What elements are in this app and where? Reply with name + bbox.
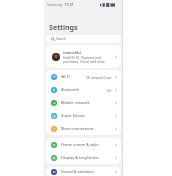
staticText: Search	[56, 37, 67, 41]
staticText: Wi-Fi	[61, 74, 70, 79]
button[interactable]: More connections	[46, 122, 121, 135]
staticText: Samsung	[47, 2, 62, 7]
staticText: Super Device	[61, 113, 85, 118]
button[interactable]: Search	[46, 35, 121, 43]
staticText: mamchbl	[63, 50, 81, 55]
button[interactable]: Home screen & style	[46, 138, 121, 151]
staticText: purchases, Cloud, and more	[63, 60, 105, 64]
staticText: Home screen & style	[61, 142, 99, 147]
staticText: Bluetooth	[61, 87, 80, 92]
button[interactable]: Super Device	[46, 109, 121, 122]
staticText: Kokbl55 ID, Payment and	[63, 56, 101, 60]
button[interactable]: Wi-Fi	[46, 70, 121, 83]
button[interactable]: Mobile network	[46, 96, 121, 109]
staticText: On	[107, 88, 112, 92]
staticText: Settings	[49, 22, 78, 32]
staticText: Sound & vibration	[61, 169, 94, 174]
button[interactable]: Sound & vibration	[46, 167, 121, 176]
staticText: More connections	[61, 126, 94, 131]
staticText: 17:41	[64, 2, 74, 7]
staticText: Mobile network	[61, 100, 90, 105]
button[interactable]: Display & brightness	[46, 151, 121, 164]
button[interactable]: Bluetooth	[46, 83, 121, 96]
button[interactable]: mamchbl	[46, 45, 121, 68]
staticText: Display & brightness	[61, 155, 99, 160]
staticText: SK network Cast	[86, 75, 112, 79]
